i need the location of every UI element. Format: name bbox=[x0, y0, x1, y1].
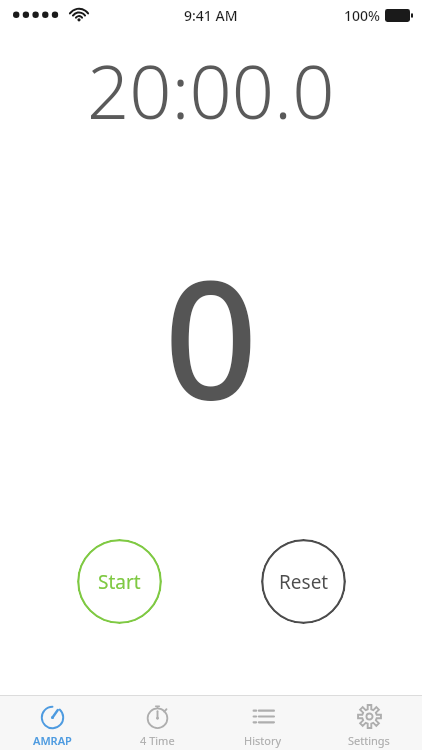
staticText: Start bbox=[98, 569, 141, 595]
staticText: 20:00.0 bbox=[87, 40, 335, 141]
staticText: Settings bbox=[348, 733, 390, 748]
button[interactable]: Start bbox=[77, 539, 162, 624]
staticText: 0 bbox=[164, 224, 258, 447]
button[interactable]: AMRAP bbox=[0, 696, 105, 750]
button[interactable]: Reset bbox=[261, 539, 346, 624]
staticText: AMRAP bbox=[33, 733, 72, 748]
staticText: Reset bbox=[279, 569, 329, 595]
button[interactable]: History bbox=[210, 696, 316, 750]
button[interactable]: 4 Time bbox=[105, 696, 210, 750]
staticText: 4 Time bbox=[140, 733, 175, 748]
button[interactable]: Settings bbox=[316, 696, 422, 750]
staticText: 9:41 AM bbox=[184, 6, 238, 25]
staticText: History bbox=[244, 733, 282, 748]
staticText: 100% bbox=[344, 6, 380, 25]
